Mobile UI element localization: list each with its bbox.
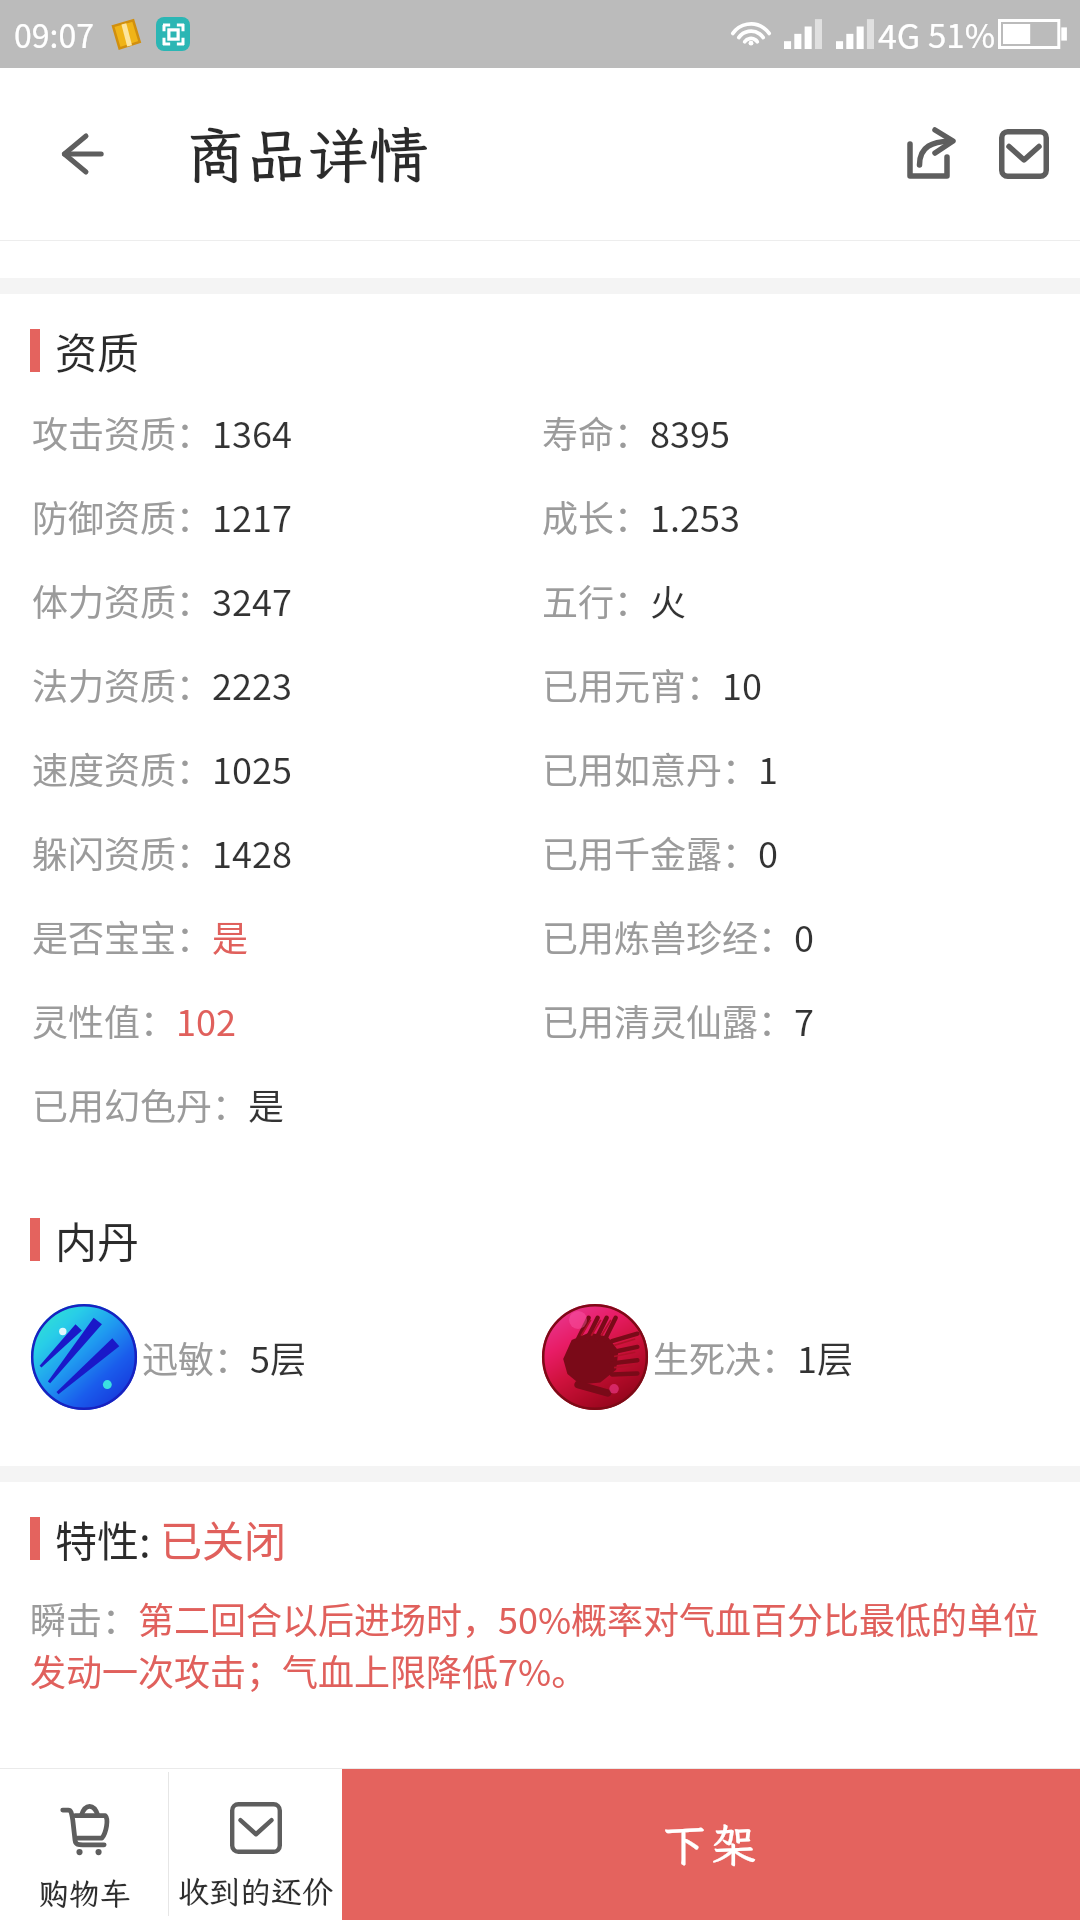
staticText: 特性:	[55, 1508, 151, 1569]
staticText: 已用如意丹：1	[542, 742, 778, 794]
staticText: 已关闭	[160, 1508, 287, 1569]
staticText: 是否宝宝：是	[32, 910, 249, 962]
staticText: 法力资质：2223	[32, 658, 292, 710]
staticText: 攻击资质：1364	[32, 406, 292, 458]
button[interactable]: 购物车	[0, 1768, 168, 1920]
button[interactable]: Back	[0, 68, 163, 240]
staticText: 已用炼兽珍经：0	[542, 910, 814, 962]
staticText: 迅敏：5层	[142, 1331, 306, 1383]
staticText: 瞬击：第二回合以后进场时，50%概率对气血百分比最低的单位发动一次攻击；气血上限…	[30, 1592, 1048, 1697]
staticText: 资质	[55, 320, 140, 381]
staticText: 躲闪资质：1428	[32, 826, 292, 878]
staticText: 防御资质：1217	[32, 490, 292, 542]
staticText: 收到的还价	[178, 1871, 333, 1912]
button[interactable]: Messages	[978, 108, 1070, 200]
staticText: 购物车	[38, 1873, 131, 1914]
button[interactable]: 收到的还价	[169, 1768, 342, 1920]
staticText: 4G	[878, 10, 921, 59]
staticText: 已用清灵仙露：7	[542, 994, 814, 1046]
staticText: 下架	[662, 1815, 761, 1874]
button[interactable]: 下架	[342, 1768, 1080, 1920]
staticText: 成长：1.253	[542, 490, 740, 542]
staticText: 已用幻色丹：是	[32, 1078, 285, 1130]
staticText: 商品详情	[185, 114, 430, 194]
staticText: 体力资质：3247	[32, 574, 292, 626]
button[interactable]: Share	[886, 108, 978, 200]
staticText: 寿命：8395	[542, 406, 730, 458]
staticText: 生死决：1层	[653, 1331, 853, 1383]
staticText: 灵性值：102	[32, 994, 236, 1046]
staticText: 已用千金露：0	[542, 826, 778, 878]
staticText: 速度资质：1025	[32, 742, 292, 794]
staticText: 五行：火	[542, 574, 687, 626]
staticText: 内丹	[55, 1209, 140, 1270]
staticText: 已用元宵：10	[542, 658, 762, 710]
staticText: 09:07	[14, 11, 94, 57]
staticText: 51%	[928, 10, 996, 58]
